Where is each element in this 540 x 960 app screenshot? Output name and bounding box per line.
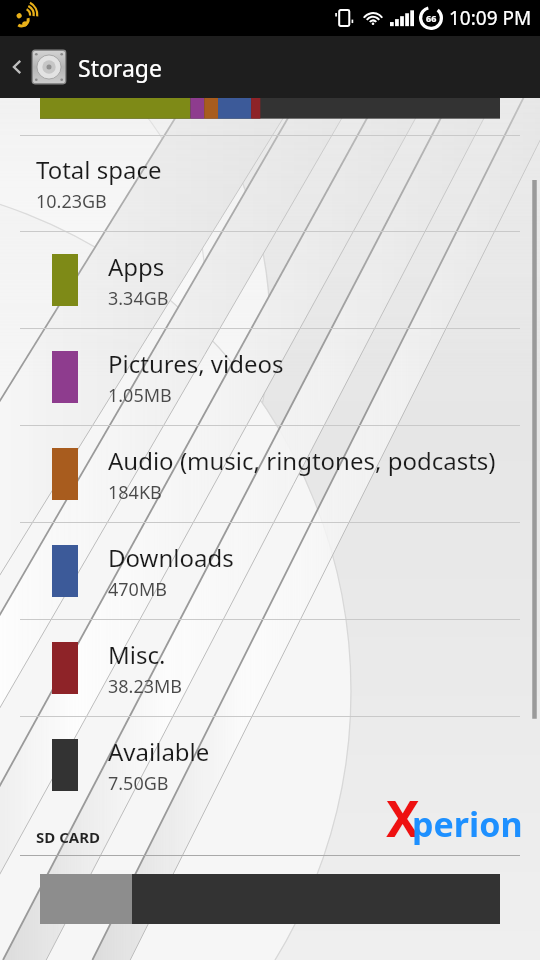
staticText: 10.23GB [36,189,107,214]
staticText: SD CARD [36,827,100,847]
button[interactable]: Downloads [0,523,540,619]
button[interactable]: Available [0,717,540,813]
staticText: Apps [108,250,165,283]
staticText: 66 [426,12,437,24]
staticText: Storage [78,52,162,83]
staticText: Total space [36,153,162,186]
staticText: Available [108,735,210,768]
button[interactable]: Audio (music, ringtones, podcasts) [0,426,540,522]
staticText: 3.34GB [108,286,169,311]
button[interactable]: Apps [0,232,540,328]
staticText: 10:09 PM [449,5,532,31]
staticText: 7.50GB [108,771,169,796]
button[interactable]: Pictures, videos [0,329,540,425]
staticText: 184KB [108,480,162,505]
staticText: Downloads [108,541,234,574]
staticText: Pictures, videos [108,347,284,380]
staticText: 1.05MB [108,383,172,408]
staticText: X [386,784,420,852]
staticText: Misc. [108,638,166,671]
button[interactable]: Misc. [0,620,540,716]
staticText: 38.23MB [108,674,183,699]
staticText: perion [412,801,523,847]
staticText: Audio (music, ringtones, podcasts) [108,444,496,477]
staticText: 470MB [108,577,167,602]
button[interactable]: Total space [0,136,540,231]
button[interactable]: Navigate up, Storage [0,36,540,98]
